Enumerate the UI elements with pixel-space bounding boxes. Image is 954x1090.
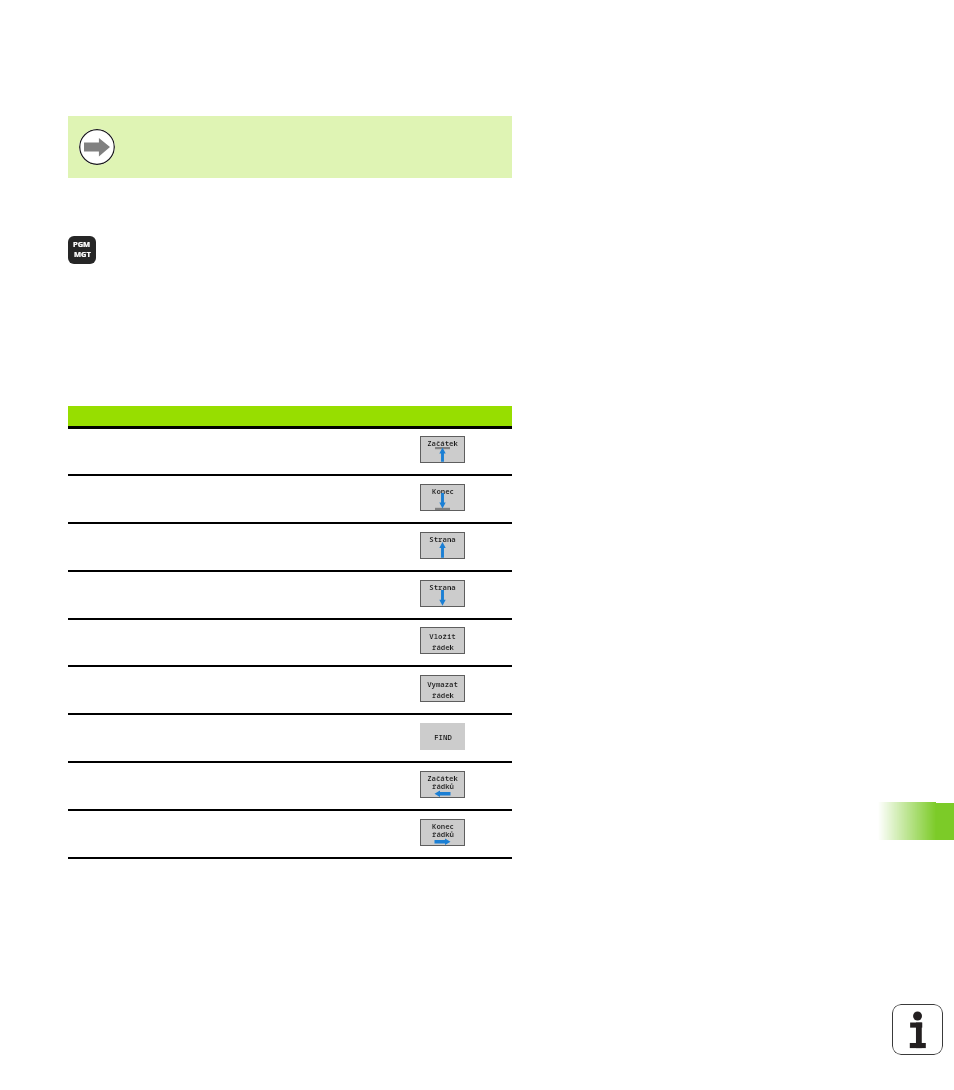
staticText: řádek — [432, 690, 454, 700]
button[interactable]: FIND — [420, 723, 465, 750]
button[interactable]: Konec — [68, 476, 512, 522]
button[interactable]: Strana — [420, 532, 465, 559]
button[interactable]: Note — [68, 116, 512, 178]
button[interactable]: FIND — [68, 715, 512, 761]
staticText: Konec — [432, 821, 454, 831]
button[interactable]: Začátek — [420, 771, 465, 798]
button[interactable]: Strana nahoru — [68, 524, 512, 570]
button[interactable]: PGM — [68, 236, 96, 264]
button[interactable]: Vymazat — [420, 675, 465, 702]
staticText: Strana — [429, 582, 456, 592]
button[interactable]: Konec — [420, 484, 465, 511]
other: Note — [79, 129, 115, 165]
button[interactable]: Strana — [420, 580, 465, 607]
staticText: Strana — [429, 534, 456, 544]
staticText: Začátek — [427, 773, 458, 783]
button[interactable]: Konec řádků — [68, 811, 512, 857]
staticText: Konec — [432, 486, 454, 496]
staticText: FIND — [434, 732, 452, 742]
staticText: Začátek — [427, 438, 458, 448]
staticText: řádek — [432, 642, 454, 652]
button[interactable]: Vložit — [420, 627, 465, 654]
button[interactable]: Začátek — [68, 429, 512, 474]
staticText: Vložit — [429, 631, 456, 641]
staticText: PGM — [73, 239, 91, 249]
staticText: MGT — [74, 249, 91, 259]
staticText: řádků — [432, 829, 454, 839]
button[interactable]: Začátek — [420, 436, 465, 463]
button[interactable]: Konec — [420, 819, 465, 846]
staticText: řádků — [432, 781, 454, 791]
button[interactable]: Information — [892, 1004, 943, 1055]
button[interactable]: Začátek řádků — [68, 763, 512, 809]
button[interactable]: Strana dolů — [68, 572, 512, 618]
button[interactable]: Vložit řádek — [68, 620, 512, 665]
button[interactable]: Vymazat řádek — [68, 667, 512, 713]
staticText: Vymazat — [427, 679, 458, 689]
